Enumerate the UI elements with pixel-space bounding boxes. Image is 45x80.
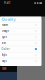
button[interactable]: Color bbox=[0, 46, 41, 52]
staticText: Quality bbox=[2, 17, 16, 22]
button[interactable]: Type bbox=[0, 34, 41, 40]
button[interactable]: Quality bbox=[0, 16, 41, 22]
staticText: Type bbox=[2, 35, 8, 39]
staticText: Name bbox=[2, 23, 9, 27]
button[interactable]: Tags bbox=[0, 58, 41, 64]
staticText: Tags bbox=[2, 59, 7, 63]
staticText: Image bbox=[2, 29, 10, 33]
button[interactable]: Name bbox=[0, 22, 41, 28]
staticText: Style bbox=[2, 53, 8, 57]
staticText: Color bbox=[2, 47, 10, 51]
button[interactable]: Size bbox=[0, 40, 41, 46]
button[interactable]: Image bbox=[0, 28, 41, 34]
staticText: Size bbox=[2, 41, 7, 45]
staticText: 9:41 bbox=[4, 1, 11, 5]
button[interactable]: Style bbox=[0, 52, 41, 58]
